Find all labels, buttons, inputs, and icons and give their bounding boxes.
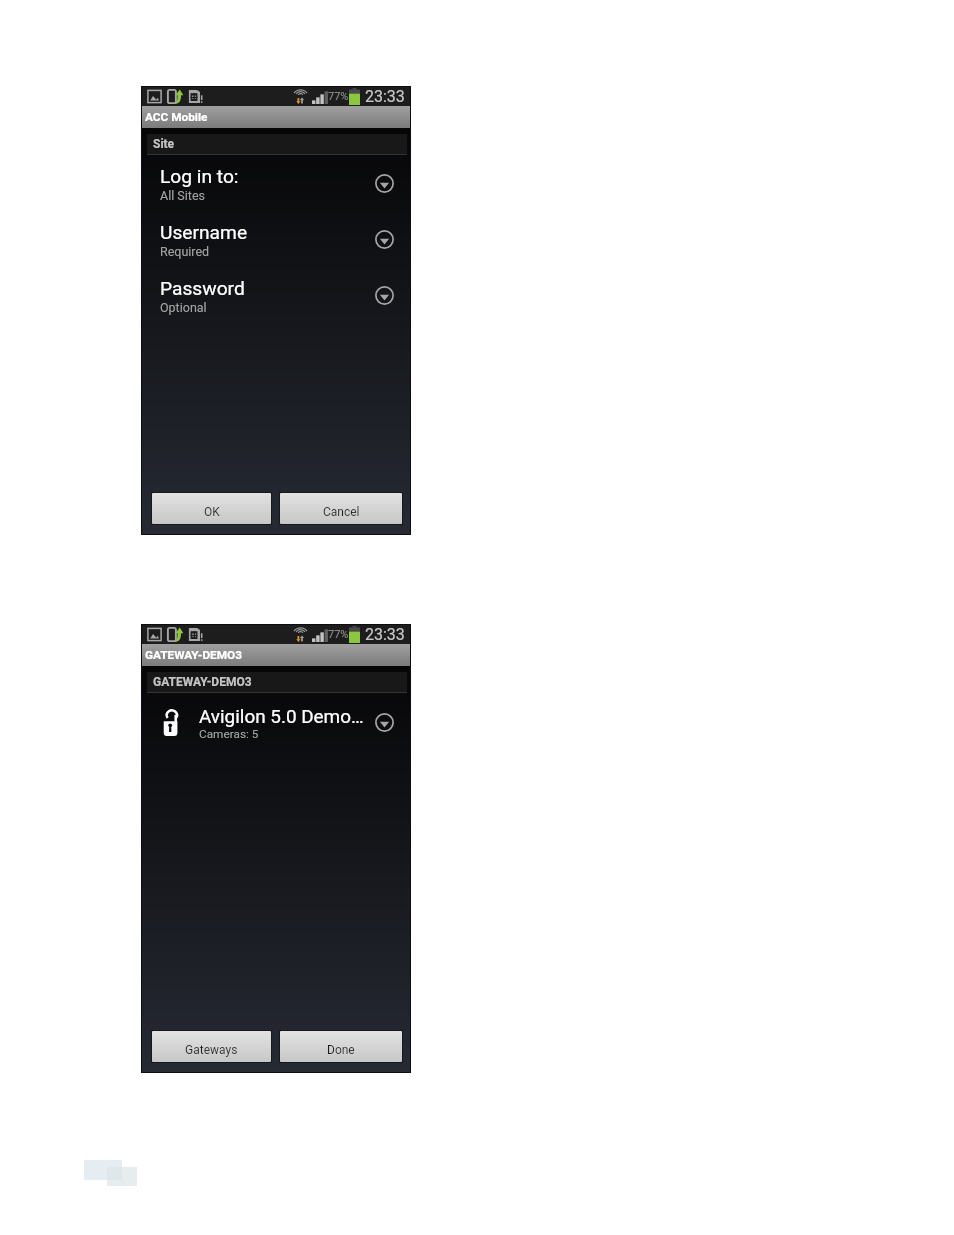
staticText: Optional (160, 300, 207, 315)
staticText: Required (160, 244, 210, 259)
staticText: 77% (328, 628, 349, 641)
staticText: All Sites (160, 188, 205, 203)
staticText: Gateways (185, 1043, 238, 1057)
staticText: Site (153, 137, 175, 151)
button[interactable]: Cancel (280, 493, 402, 524)
other: Expand (375, 286, 394, 305)
staticText: Avigilon 5.0 Demo… (199, 705, 364, 727)
button[interactable]: Log in to: (141, 160, 411, 207)
staticText: 77% (328, 90, 349, 103)
staticText: Cameras: 5 (199, 727, 259, 741)
staticText: GATEWAY-DEMO3 (145, 648, 242, 662)
other: Unlocked site (163, 709, 181, 736)
staticText: Password (160, 277, 245, 300)
other: Expand (375, 174, 394, 193)
staticText: Log in to: (160, 165, 239, 188)
staticText: Username (160, 221, 248, 244)
button[interactable]: OK (152, 493, 271, 524)
staticText: ACC Mobile (145, 110, 208, 124)
other: Expand (375, 713, 394, 732)
staticText: GATEWAY-DEMO3 (153, 675, 252, 689)
staticText: Cancel (323, 505, 360, 519)
button[interactable]: Unlocked site (141, 699, 411, 746)
button[interactable]: Done (280, 1031, 402, 1062)
staticText: Done (327, 1043, 355, 1057)
other: Expand (375, 230, 394, 249)
staticText: 23:33 (365, 625, 405, 644)
button[interactable]: Password (141, 272, 411, 319)
staticText: OK (204, 505, 220, 519)
staticText: 23:33 (365, 87, 405, 106)
button[interactable]: Gateways (152, 1031, 271, 1062)
button[interactable]: Username (141, 216, 411, 263)
